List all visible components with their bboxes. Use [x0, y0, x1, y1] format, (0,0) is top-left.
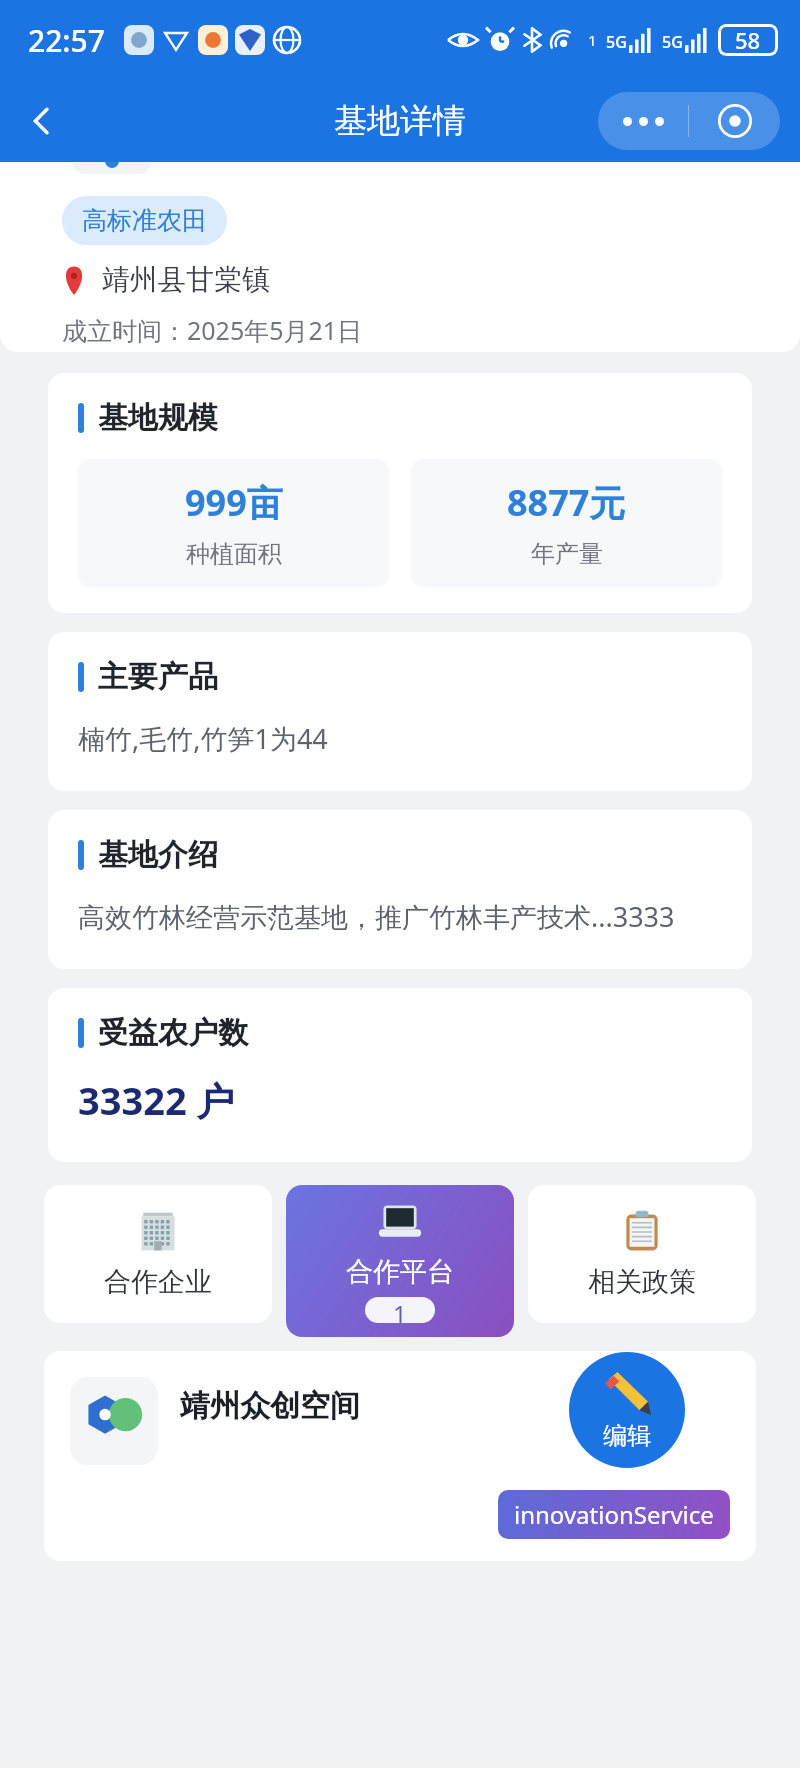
staticText: 5G [606, 31, 627, 53]
staticText: 年产量 [531, 539, 603, 569]
staticText: 受益农户数 [98, 1014, 248, 1052]
staticText: 高效竹林经营示范基地，推广竹林丰产技术...3333 [78, 898, 675, 935]
staticText: 58 [735, 25, 761, 55]
staticText: 基地详情 [334, 100, 466, 142]
staticText: 主要产品 [98, 658, 218, 696]
staticText: 1 [393, 1297, 407, 1323]
staticText: 成立时间：2025年5月21日 [62, 313, 363, 347]
staticText: 相关政策 [588, 1265, 696, 1299]
staticText: 999亩 [185, 478, 283, 527]
staticText: 楠竹,毛竹,竹笋1为44 [78, 720, 328, 757]
staticText: 基地规模 [98, 399, 218, 437]
button[interactable]: 合作企业 [44, 1185, 272, 1323]
button[interactable]: 编辑 [569, 1352, 685, 1468]
staticText: 高标准农田 [82, 205, 207, 236]
button[interactable]: 相关政策 [528, 1185, 756, 1323]
staticText: 种植面积 [186, 539, 282, 569]
staticText: 合作平台 [346, 1255, 454, 1289]
staticText: 靖州县甘棠镇 [102, 262, 270, 297]
staticText: 基地介绍 [98, 836, 218, 874]
staticText: innovationService [514, 1498, 714, 1531]
staticText: 1 [588, 30, 597, 50]
staticText: 33322 户 [78, 1074, 235, 1126]
staticText: 靖州众创空间 [180, 1387, 360, 1425]
button[interactable]: Back [14, 93, 70, 149]
staticText: 合作企业 [104, 1265, 212, 1299]
button[interactable]: 靖州众创空间 [44, 1351, 756, 1561]
button[interactable]: Close [689, 92, 780, 150]
staticText: 22:57 [28, 20, 105, 61]
button[interactable]: 合作平台 [286, 1185, 514, 1337]
staticText: 5G [662, 31, 683, 53]
staticText: 编辑 [603, 1421, 651, 1451]
staticText: 8877元 [507, 478, 626, 527]
button[interactable]: More options [598, 92, 688, 150]
